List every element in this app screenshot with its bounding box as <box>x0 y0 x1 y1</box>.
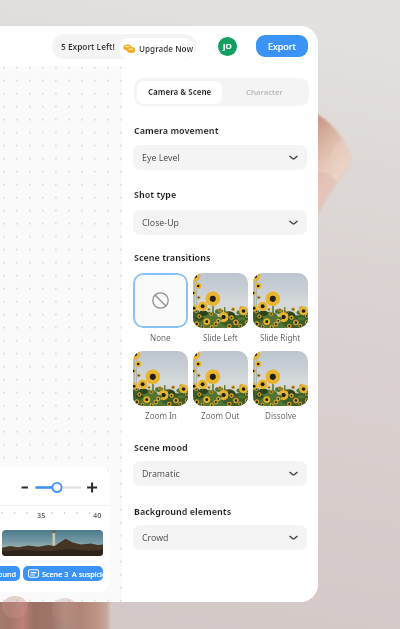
button[interactable] <box>133 351 188 406</box>
button[interactable]: 5 Export Left! <box>52 34 197 59</box>
button[interactable] <box>253 273 308 328</box>
button[interactable] <box>193 273 248 328</box>
staticText: Character <box>246 87 283 98</box>
other: No transition <box>152 292 169 309</box>
button[interactable]: Dramatic <box>133 461 307 486</box>
button[interactable]: Export <box>256 35 308 57</box>
staticText: Dissolve <box>265 410 297 421</box>
staticText: Zoom In <box>145 410 177 421</box>
staticText: Upgrade Now <box>139 43 194 54</box>
button[interactable]: Eye Level <box>133 145 307 170</box>
staticText: Scene mood <box>134 441 188 453</box>
staticText: Background elements <box>134 505 232 517</box>
staticText: JO <box>223 41 232 52</box>
staticText: Eye Level <box>142 152 180 164</box>
button[interactable]: Scene 3 A suspicio <box>23 566 103 581</box>
button[interactable]: Close-Up <box>133 210 307 235</box>
button[interactable] <box>193 351 248 406</box>
button[interactable] <box>253 351 308 406</box>
staticText: Slide Left <box>203 332 238 343</box>
staticText: None <box>150 332 171 343</box>
staticText: Camera & Scene <box>148 87 212 98</box>
staticText: ound <box>0 569 16 579</box>
button[interactable]: Upgrade Now <box>119 38 194 59</box>
staticText: Export <box>268 40 296 52</box>
button[interactable]: Crowd <box>133 525 307 550</box>
staticText: 35 <box>37 510 46 520</box>
staticText: Close-Up <box>142 217 179 229</box>
button[interactable]: No transition <box>133 273 188 328</box>
button[interactable]: ound <box>0 566 20 581</box>
staticText: Scene 3 A suspicio <box>42 569 103 579</box>
staticText: Dramatic <box>142 468 180 480</box>
button[interactable]: Camera & Scene <box>137 81 222 104</box>
staticText: Scene transitions <box>134 251 211 263</box>
staticText: Slide Right <box>260 332 301 343</box>
staticText: Camera movement <box>134 124 219 136</box>
button[interactable]: Profile JO <box>218 37 237 56</box>
staticText: Crowd <box>142 532 169 544</box>
staticText: 5 Export Left! <box>61 41 115 52</box>
staticText: Zoom Out <box>201 410 240 421</box>
button[interactable]: Character <box>222 81 307 104</box>
staticText: Shot type <box>134 188 177 200</box>
staticText: 40 <box>93 510 102 520</box>
